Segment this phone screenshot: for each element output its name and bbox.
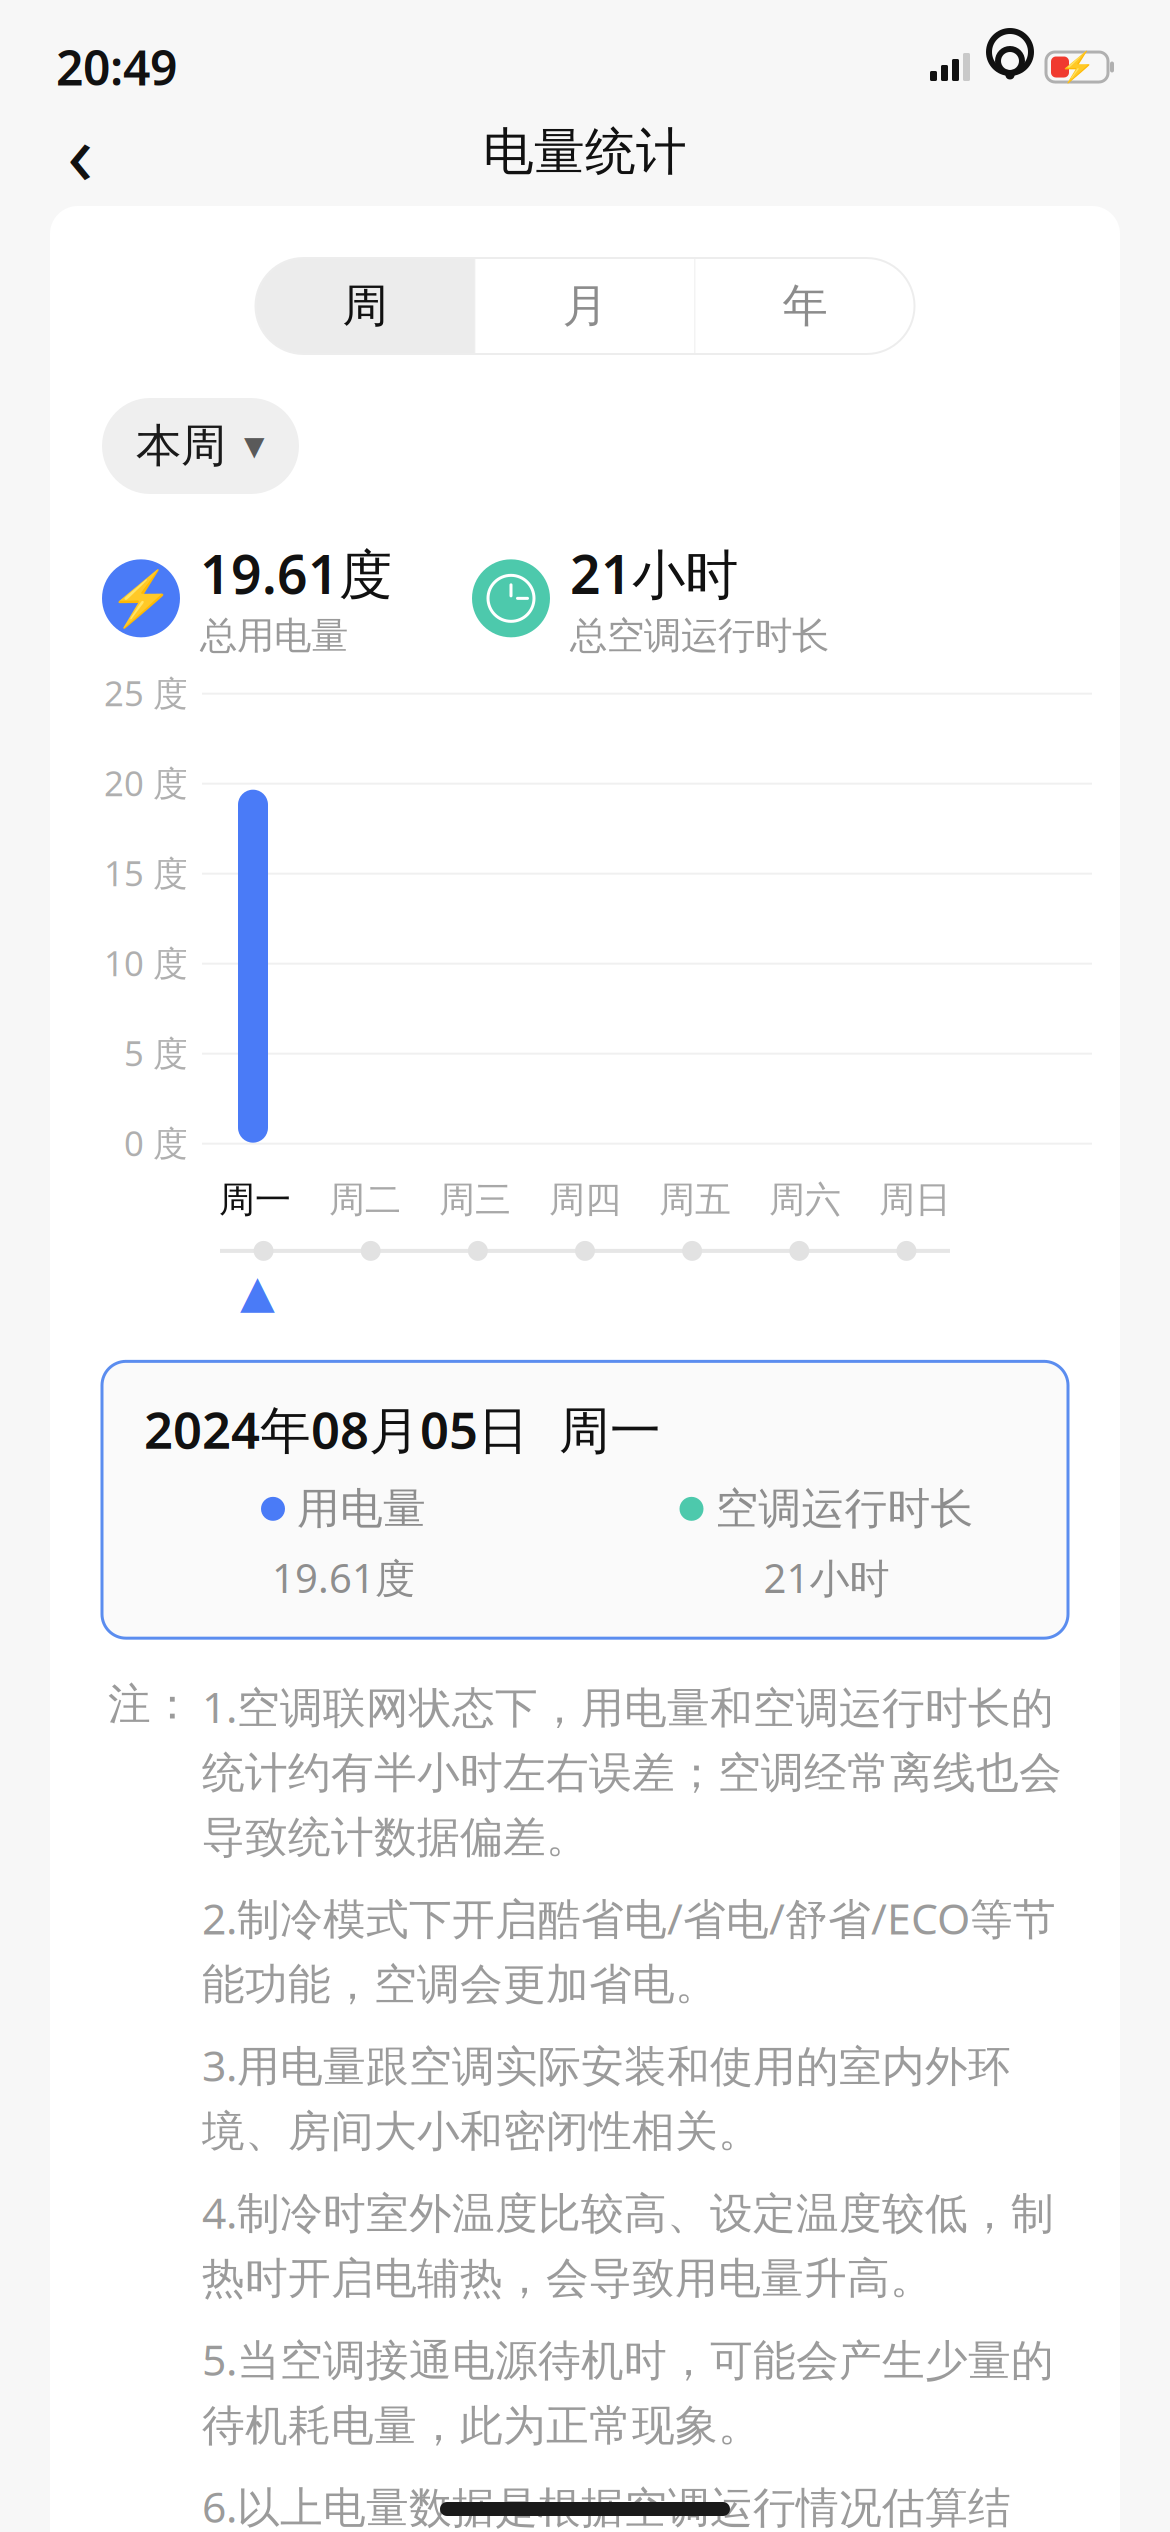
staticText: 电量统计 <box>483 121 687 183</box>
staticText: 周二 <box>329 1178 401 1222</box>
button[interactable]: 年 <box>695 258 914 354</box>
staticText: ⚡ <box>108 568 174 629</box>
staticText: 6.以上电量数据是根据空调运行情况估算结果，仅 <box>202 2478 1011 2532</box>
staticText: 周五 <box>659 1178 731 1222</box>
staticText: 用电量 <box>297 1483 426 1535</box>
staticText: 月 <box>562 278 607 334</box>
staticText: 注： <box>108 1678 194 1731</box>
staticText: ⚡ <box>1058 50 1095 84</box>
staticText: 空调运行时长 <box>715 1483 973 1535</box>
staticText: 20 度 <box>104 760 188 806</box>
button[interactable]: Back <box>40 112 120 192</box>
staticText: 周一 <box>219 1178 291 1222</box>
button[interactable]: 月 <box>475 258 694 354</box>
staticText: ▲ <box>240 1266 275 1317</box>
staticText: 3.用电量跟空调实际安装和使用的室内外环境、房间大小和密闭性相关。 <box>202 2037 1011 2158</box>
staticText: 4.制冷时室外温度比较高、设定温度较低，制热时开启电辅热，会导致用电量升高。 <box>202 2184 1054 2305</box>
staticText: 21小时 <box>570 538 738 609</box>
staticText: 5.当空调接通电源待机时，可能会产生少量的待机耗电量，此为正常现象。 <box>202 2331 1054 2452</box>
staticText: 总空调运行时长 <box>570 613 829 659</box>
staticText: 周三 <box>439 1178 511 1222</box>
staticText: 总用电量 <box>200 613 348 659</box>
staticText: 15 度 <box>104 850 188 896</box>
staticText: 周日 <box>879 1178 951 1222</box>
staticText: ‹ <box>67 95 93 209</box>
staticText: 19.61度 <box>200 538 392 609</box>
staticText: 5 度 <box>124 1030 188 1076</box>
staticText: ▼ <box>244 431 265 461</box>
staticText: 10 度 <box>104 940 188 986</box>
staticText: 0 度 <box>124 1120 188 1166</box>
button[interactable]: 周 <box>255 258 474 354</box>
button[interactable]: 本周 <box>102 398 299 494</box>
staticText: 年 <box>782 278 827 334</box>
staticText: 20:49 <box>56 35 177 99</box>
staticText: 25 度 <box>104 670 188 716</box>
staticText: 19.61度 <box>272 1551 415 1604</box>
staticText: 2.制冷模式下开启酷省电/省电/舒省/ECO等节能功能，空调会更加省电。 <box>202 1890 1056 2011</box>
staticText: 21小时 <box>763 1551 889 1604</box>
staticText: 1.空调联网状态下，用电量和空调运行时长的统计约有半小时左右误差；空调经常离线也… <box>202 1678 1062 1864</box>
staticText: 周 <box>342 278 387 334</box>
staticText: 本周 <box>136 418 226 474</box>
staticText: 周六 <box>769 1178 841 1222</box>
staticText: 周四 <box>549 1178 621 1222</box>
staticText: 2024年08月05日 周一 <box>144 1395 661 1463</box>
